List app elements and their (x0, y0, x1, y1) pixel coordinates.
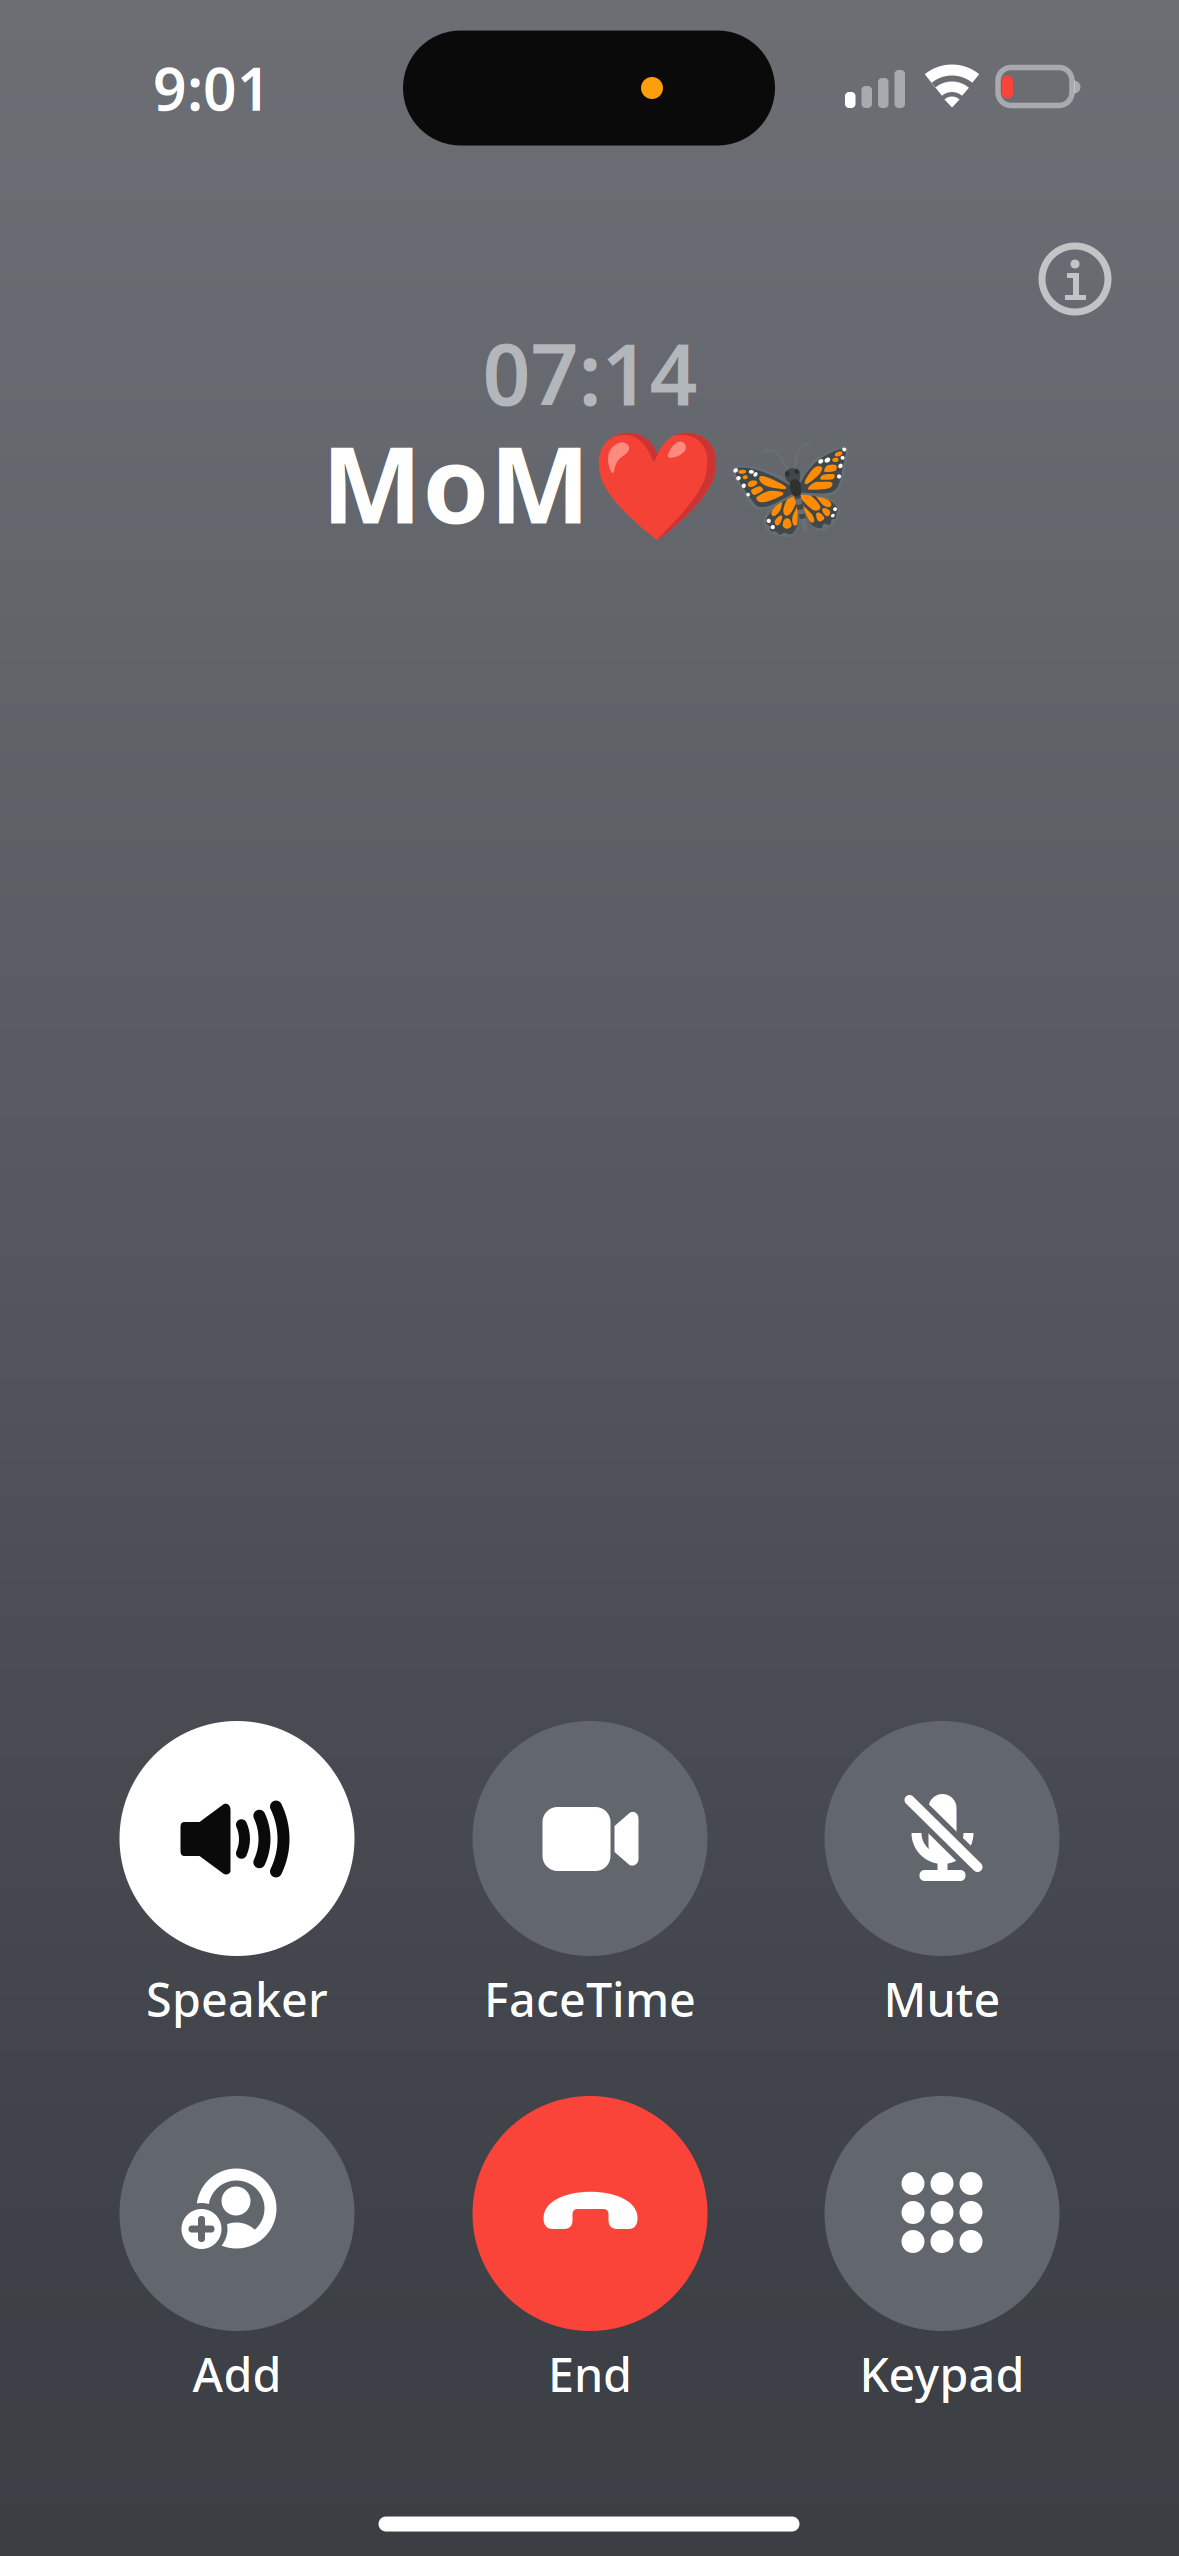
button[interactable]: End (440, 2096, 740, 2401)
button[interactable]: Call Info (1023, 227, 1127, 331)
staticText: FaceTime (484, 1968, 696, 2030)
button[interactable]: Keypad (792, 2096, 1092, 2401)
staticText: Speaker (146, 1968, 328, 2030)
staticText: MoM❤️🦋 (321, 411, 856, 553)
button[interactable]: Speaker (87, 1721, 387, 2026)
button[interactable]: FaceTime (440, 1721, 740, 2026)
button[interactable]: Add (87, 2096, 387, 2401)
staticText: 07:14 (482, 317, 697, 429)
staticText: 9:01 (153, 49, 271, 127)
staticText: End (548, 2343, 632, 2405)
staticText: Add (192, 2343, 281, 2405)
button[interactable]: Mute (792, 1721, 1092, 2026)
staticText: Keypad (859, 2343, 1024, 2405)
staticText: Mute (883, 1968, 1000, 2030)
